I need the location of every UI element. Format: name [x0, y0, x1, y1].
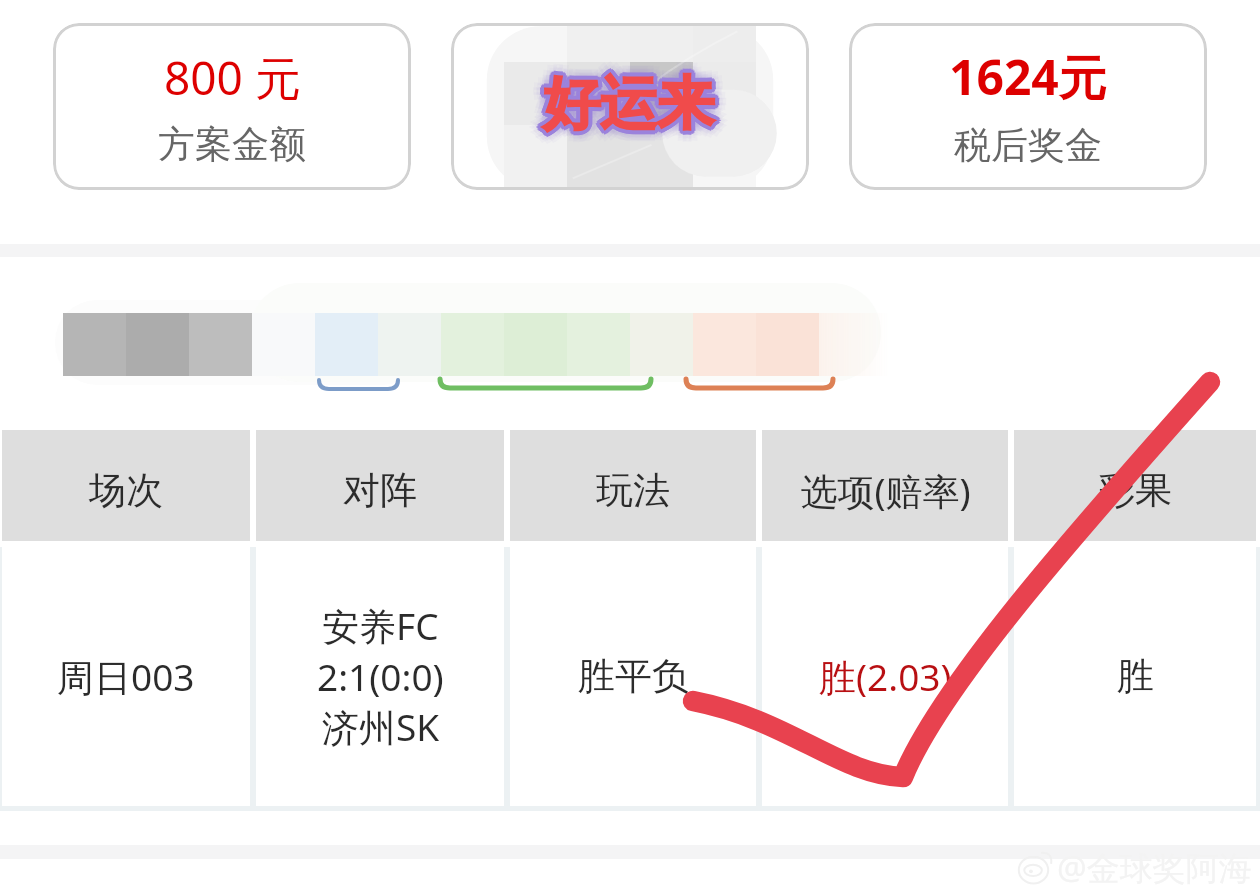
- button[interactable]: 胜(2.03): [762, 547, 1008, 806]
- staticText: 好运来: [547, 68, 718, 140]
- staticText: 方案金额: [158, 121, 306, 168]
- staticText: 好运来: [532, 68, 703, 140]
- staticText: 好运来: [536, 64, 707, 136]
- staticText: 胜平负: [578, 653, 689, 700]
- staticText: 好运来: [549, 58, 720, 130]
- staticText: 好运来: [547, 75, 718, 147]
- staticText: 好运来: [533, 73, 704, 145]
- staticText: 好运来: [543, 57, 714, 129]
- staticText: 好运来: [553, 62, 724, 134]
- staticText: 好运来: [550, 72, 721, 144]
- staticText: @金球奖阿海: [1057, 845, 1252, 890]
- staticText: 2:1(0:0): [317, 651, 444, 701]
- button[interactable]: 场次: [2, 430, 250, 541]
- staticText: 好运来: [539, 68, 710, 140]
- staticText: 好运来: [539, 61, 710, 133]
- staticText: 好运来: [543, 79, 714, 151]
- staticText: 1624元: [949, 44, 1107, 110]
- button[interactable]: 周日003: [2, 547, 250, 806]
- staticText: 好运来: [543, 64, 714, 136]
- staticText: 好运来: [539, 75, 710, 147]
- staticText: 好运来: [545, 71, 716, 143]
- staticText: 对阵: [343, 467, 417, 514]
- staticText: 济州SK: [322, 701, 440, 752]
- button[interactable]: 好运来: [451, 23, 809, 190]
- staticText: 好运来: [549, 78, 720, 150]
- button[interactable]: 800 元: [53, 23, 411, 190]
- button[interactable]: 安养FC: [256, 547, 504, 806]
- staticText: 好运来: [553, 73, 724, 145]
- staticText: 好运来: [543, 60, 714, 132]
- staticText: 周日003: [57, 651, 195, 702]
- staticText: 好运来: [554, 68, 725, 140]
- staticText: 场次: [89, 467, 163, 514]
- staticText: 税后奖金: [954, 122, 1102, 169]
- staticText: 好运来: [545, 65, 716, 137]
- staticText: 彩果: [1098, 467, 1172, 514]
- staticText: 胜: [1117, 653, 1154, 700]
- staticText: 好运来: [540, 66, 711, 138]
- staticText: 800 元: [164, 46, 301, 109]
- staticText: 好运来: [537, 58, 708, 130]
- staticText: 好运来: [538, 78, 709, 150]
- button[interactable]: 胜: [1014, 547, 1256, 806]
- staticText: 好运来: [543, 68, 714, 140]
- staticText: 好运来: [546, 66, 717, 138]
- staticText: 好运来: [546, 70, 717, 142]
- staticText: 好运来: [533, 63, 704, 135]
- button[interactable]: 1624元: [849, 23, 1207, 190]
- button[interactable]: 彩果: [1014, 430, 1256, 541]
- staticText: 好运来: [535, 68, 706, 140]
- button[interactable]: 胜平负: [510, 547, 756, 806]
- staticText: 好运来: [543, 72, 714, 144]
- staticText: 好运来: [550, 64, 721, 136]
- other: Weibo: [1015, 847, 1057, 889]
- staticText: 好运来: [551, 68, 722, 140]
- button[interactable]: 对阵: [256, 430, 504, 541]
- staticText: 玩法: [596, 467, 670, 514]
- staticText: 好运来: [541, 65, 712, 137]
- staticText: 胜(2.03): [819, 651, 952, 702]
- staticText: 好运来: [543, 76, 714, 148]
- staticText: 好运来: [547, 61, 718, 133]
- staticText: 安养FC: [322, 600, 439, 651]
- button[interactable]: 选项(赔率): [762, 430, 1008, 541]
- staticText: 好运来: [541, 71, 712, 143]
- button[interactable]: 玩法: [510, 430, 756, 541]
- staticText: 好运来: [536, 72, 707, 144]
- staticText: 好运来: [540, 70, 711, 142]
- staticText: 选项(赔率): [800, 465, 971, 516]
